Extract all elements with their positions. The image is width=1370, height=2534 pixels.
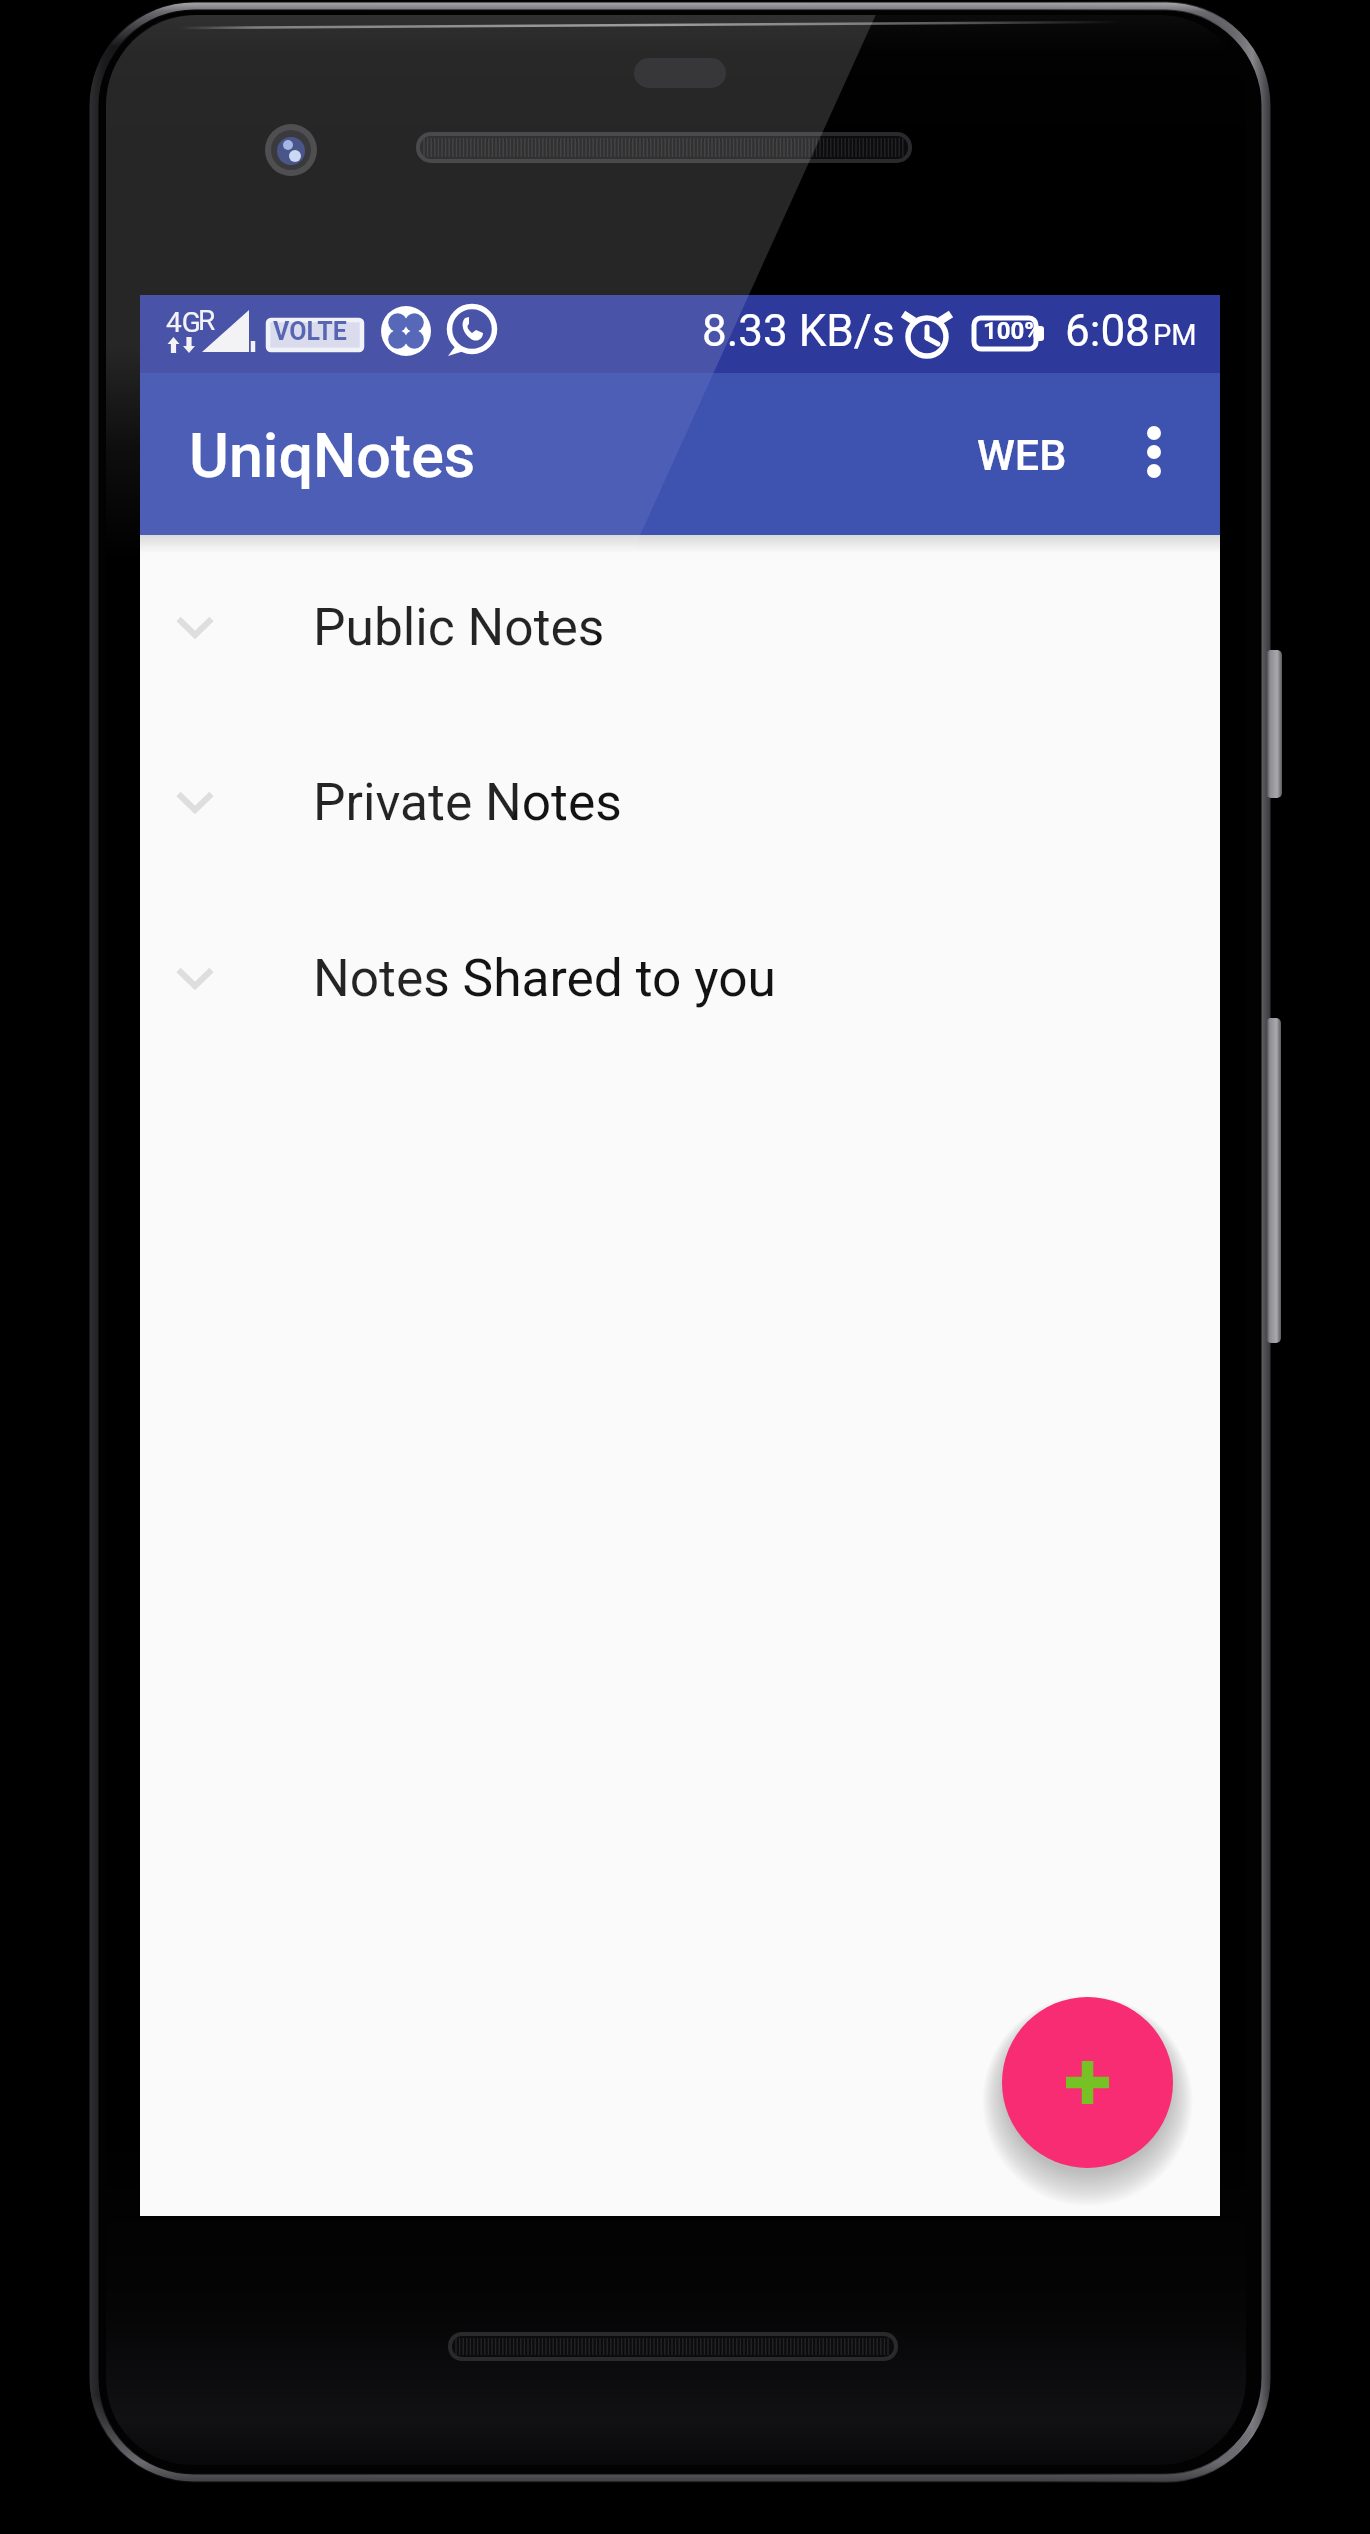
staticText: 100% xyxy=(983,317,1043,345)
button[interactable]: Notes Shared to you xyxy=(140,882,1220,1042)
button[interactable]: More options xyxy=(1090,373,1218,535)
staticText: PM xyxy=(1153,318,1197,352)
staticText: WEB xyxy=(977,430,1067,480)
button[interactable]: Add note xyxy=(1002,1997,1173,2168)
staticText: UniqNotes xyxy=(189,420,476,491)
staticText: 4G xyxy=(166,306,201,339)
staticText: VOLTE xyxy=(273,317,347,346)
staticText: Notes Shared to you xyxy=(313,948,776,1008)
button[interactable]: WEB xyxy=(960,373,1084,535)
staticText: Private Notes xyxy=(313,772,622,832)
staticText: 8.33 KB/s xyxy=(702,305,895,357)
button[interactable]: Public Notes xyxy=(140,531,1220,691)
staticText: 6:08 xyxy=(1065,305,1150,357)
staticText: R xyxy=(198,304,216,337)
staticText: Public Notes xyxy=(313,597,605,657)
button[interactable]: Private Notes xyxy=(140,706,1220,866)
